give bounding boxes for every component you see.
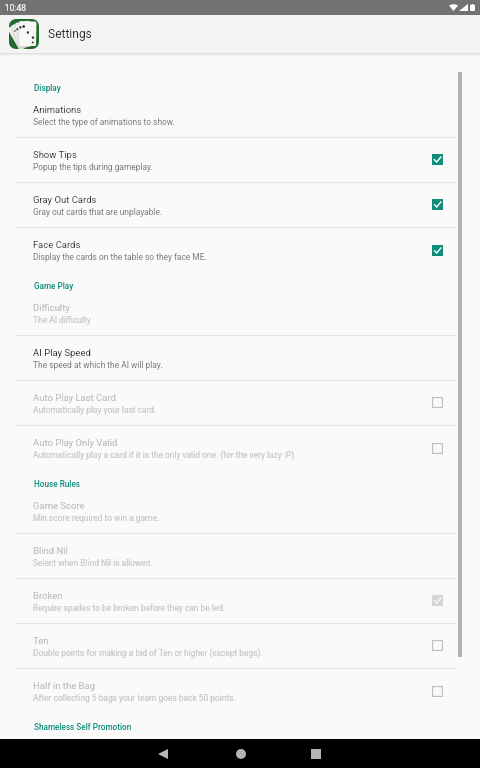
- staticText: Select the type of animations to show.: [33, 117, 175, 127]
- button[interactable]: Home: [203, 739, 278, 768]
- staticText: AI Play Speed: [33, 347, 91, 358]
- staticText: Half in the Bag: [33, 680, 95, 691]
- staticText: Broken: [33, 590, 63, 601]
- staticText: Require spades to be broken before they …: [33, 603, 226, 613]
- staticText: Auto Play Last Card: [33, 392, 116, 403]
- staticText: Blind Nil: [33, 545, 68, 556]
- button[interactable]: Gray Out Cards: [0, 183, 480, 227]
- staticText: Show Tips: [33, 149, 77, 160]
- staticText: Double points for making a bid of Ten or…: [33, 648, 263, 658]
- button[interactable]: Ten: [0, 624, 480, 668]
- staticText: The speed at which the AI will play.: [33, 360, 163, 370]
- staticText: Select when Blind Nil is allowed.: [33, 558, 153, 568]
- button[interactable]: Auto Play Last Card: [0, 381, 480, 425]
- button[interactable]: Blind Nil: [0, 534, 480, 578]
- button[interactable]: Recent apps: [278, 739, 353, 768]
- staticText: House Rules: [34, 479, 81, 489]
- staticText: Display: [34, 83, 61, 93]
- staticText: Settings: [48, 27, 92, 41]
- button[interactable]: Spades app icon: [9, 19, 39, 49]
- button[interactable]: Face Cards: [0, 228, 480, 273]
- staticText: Automatically play your last card.: [33, 405, 157, 415]
- staticText: Face Cards: [33, 239, 81, 250]
- staticText: Min score required to win a game.: [33, 513, 160, 523]
- staticText: Popup the tips during gameplay.: [33, 162, 153, 172]
- staticText: Game Play: [34, 281, 74, 291]
- button[interactable]: Back: [125, 739, 200, 768]
- button[interactable]: Game Score: [0, 489, 480, 533]
- staticText: Auto Play Only Valid: [33, 437, 118, 448]
- staticText: Display the cards on the table so they f…: [33, 252, 207, 262]
- button[interactable]: Half in the Bag: [0, 669, 480, 714]
- button[interactable]: Difficulty: [0, 291, 480, 335]
- staticText: After collecting 5 bags your team goes b…: [33, 693, 236, 703]
- staticText: Difficulty: [33, 302, 70, 313]
- button[interactable]: Animations: [0, 93, 480, 137]
- button[interactable]: AI Play Speed: [0, 336, 480, 380]
- button[interactable]: Show Tips: [0, 138, 480, 182]
- staticText: Game Score: [33, 500, 85, 511]
- staticText: Ten: [33, 635, 49, 646]
- staticText: Shameless Self Promotion: [34, 722, 132, 732]
- staticText: Gray Out Cards: [33, 194, 97, 205]
- staticText: Automatically play a card if it is the o…: [33, 450, 295, 460]
- staticText: Gray out cards that are unplayable.: [33, 207, 163, 217]
- staticText: 10:48: [5, 3, 26, 13]
- button[interactable]: Broken: [0, 579, 480, 623]
- staticText: The AI difficulty: [33, 315, 91, 325]
- staticText: Animations: [33, 104, 82, 115]
- button[interactable]: Auto Play Only Valid: [0, 426, 480, 471]
